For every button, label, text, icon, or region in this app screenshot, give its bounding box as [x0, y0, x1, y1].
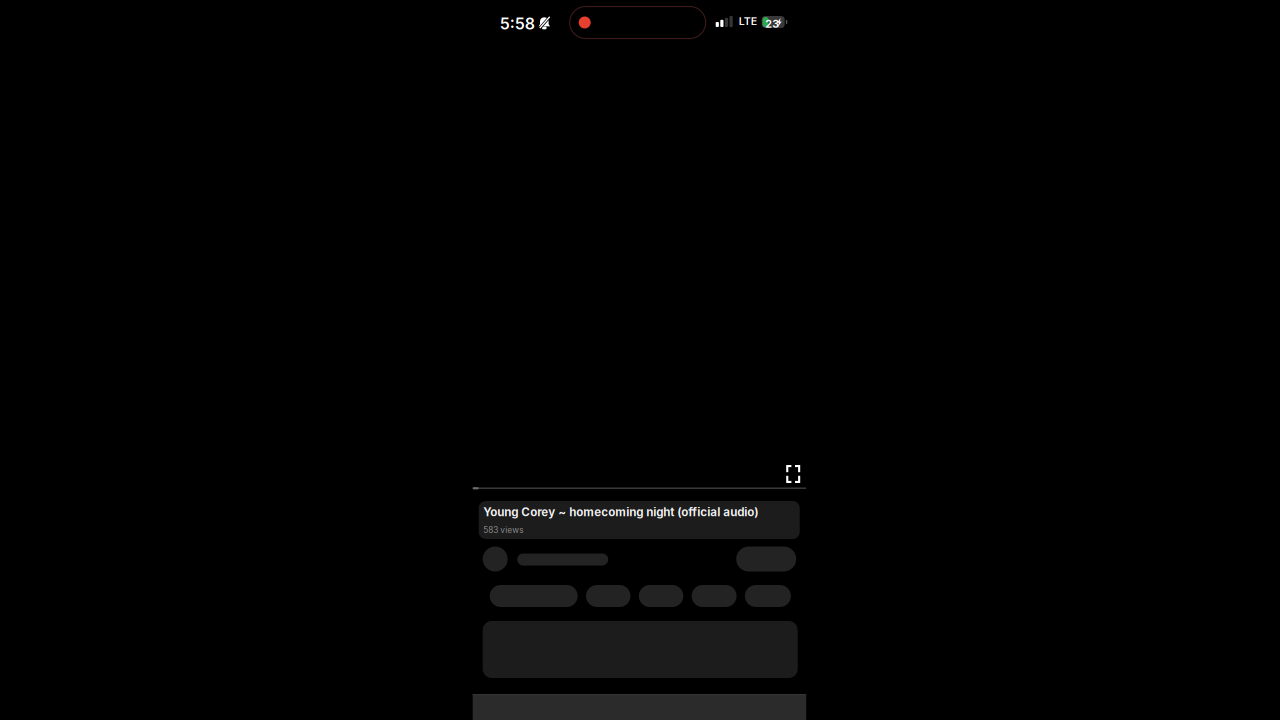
- button[interactable]: Share: [586, 585, 630, 607]
- staticText: 5:58: [500, 14, 535, 33]
- button[interactable]: Channel: [483, 546, 609, 571]
- staticText: 583 views: [483, 525, 523, 535]
- staticText: 23: [765, 17, 779, 30]
- button[interactable]: Full screen: [780, 459, 806, 489]
- button[interactable]: Subscribe: [736, 546, 796, 571]
- staticText: Young Corey ~ homecoming night (official…: [483, 505, 758, 519]
- button[interactable]: Remix: [639, 585, 683, 607]
- button[interactable]: Download: [692, 585, 737, 607]
- button[interactable]: Like and dislike: [490, 585, 578, 607]
- button[interactable]: Young Corey ~ homecoming night (official…: [479, 501, 800, 539]
- button[interactable]: Save: [745, 585, 791, 607]
- staticText: LTE: [739, 15, 757, 28]
